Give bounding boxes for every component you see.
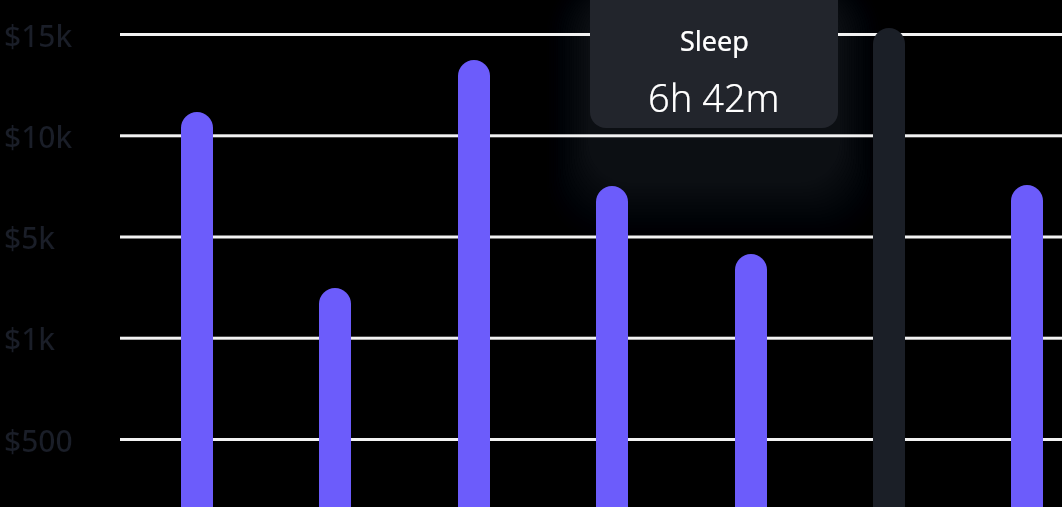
staticText: 6h 42m: [648, 71, 780, 123]
staticText: $1k: [4, 318, 56, 359]
staticText: Sleep: [680, 22, 749, 59]
staticText: $5k: [4, 217, 56, 258]
staticText: $15k: [4, 15, 73, 56]
staticText: $10k: [4, 116, 73, 157]
button[interactable]: Sleep 6h 42m: [590, 0, 838, 128]
staticText: $500: [4, 420, 73, 461]
